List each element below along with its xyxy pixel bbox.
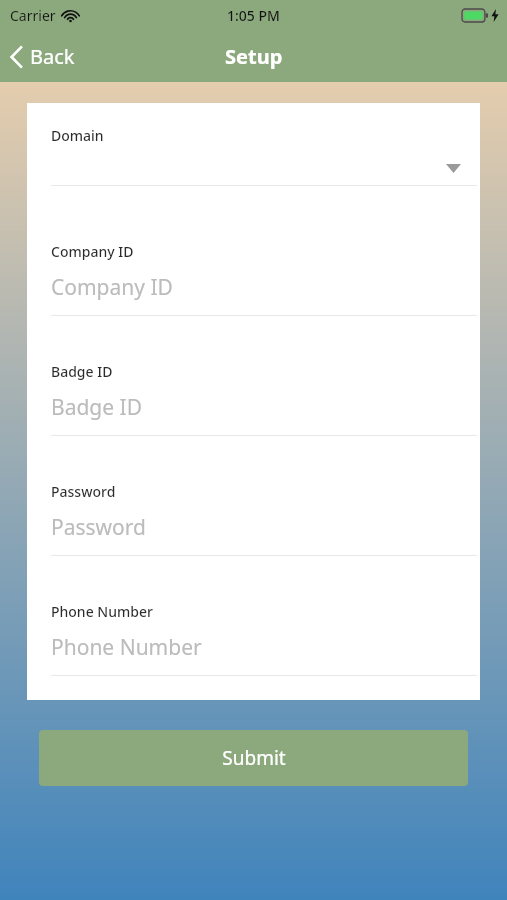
other: Wi-Fi signal xyxy=(62,9,79,22)
staticText: Phone Number xyxy=(51,633,202,662)
staticText: Password xyxy=(51,513,146,542)
staticText: Domain xyxy=(51,126,104,145)
staticText: Submit xyxy=(222,745,286,771)
button[interactable]: Submit xyxy=(39,730,468,786)
button[interactable]: Back xyxy=(0,37,87,76)
staticText: Back xyxy=(30,43,75,70)
button[interactable]: Password xyxy=(27,463,480,583)
staticText: Phone Number xyxy=(51,602,153,621)
staticText: Badge ID xyxy=(51,362,113,381)
staticText: Company ID xyxy=(51,273,173,302)
staticText: 1:05 PM xyxy=(227,6,280,25)
staticText: Carrier xyxy=(10,6,56,25)
other: Open domain dropdown xyxy=(446,164,461,173)
other: Battery charging xyxy=(462,9,488,22)
button[interactable]: Domain xyxy=(27,103,480,223)
staticText: Setup xyxy=(225,43,283,70)
staticText: Badge ID xyxy=(51,393,143,422)
staticText: Company ID xyxy=(51,242,134,261)
button[interactable]: Company ID xyxy=(27,223,480,343)
button[interactable]: Phone Number xyxy=(27,583,480,700)
staticText: Password xyxy=(51,482,116,501)
button[interactable]: Badge ID xyxy=(27,343,480,463)
